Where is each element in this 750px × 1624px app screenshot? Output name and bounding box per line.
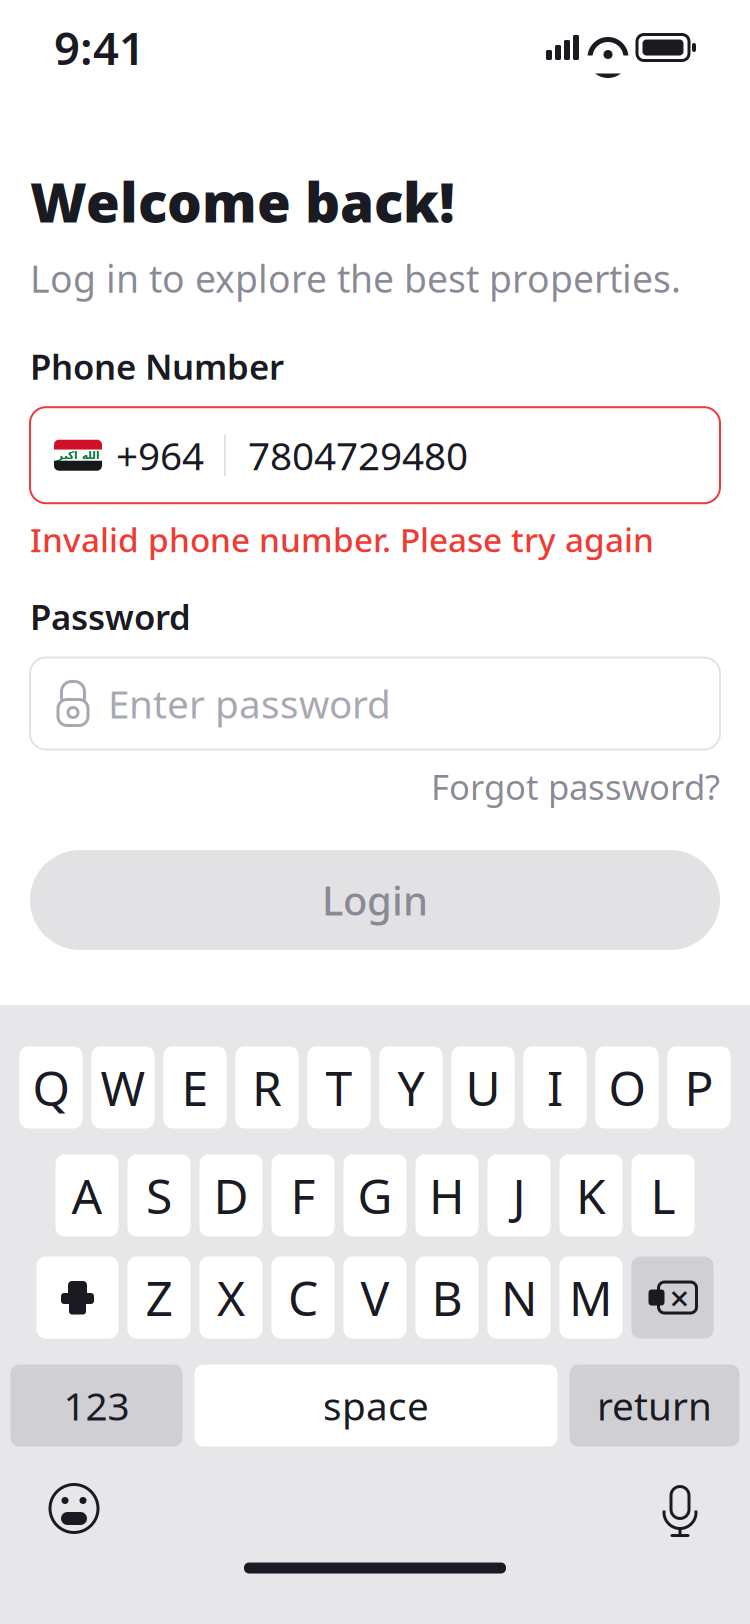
staticText: Invalid phone number. Please try again — [30, 517, 654, 561]
button[interactable]: T — [307, 1046, 370, 1128]
staticText: T — [325, 1056, 352, 1119]
button[interactable]: D — [199, 1154, 262, 1236]
staticText: +964 — [116, 429, 204, 481]
staticText: B — [431, 1266, 462, 1329]
staticText: U — [465, 1056, 500, 1119]
staticText: L — [650, 1164, 675, 1227]
button[interactable]: O — [595, 1046, 658, 1128]
button[interactable]: Emoji — [48, 1482, 100, 1534]
button[interactable]: N — [487, 1256, 550, 1338]
staticText: O — [608, 1056, 645, 1119]
button[interactable]: Shift — [36, 1256, 118, 1338]
staticText: F — [290, 1164, 315, 1227]
button[interactable]: Enter password — [30, 657, 720, 749]
button[interactable]: C — [271, 1256, 334, 1338]
staticText: Forgot password? — [431, 763, 720, 809]
button[interactable]: B — [415, 1256, 478, 1338]
staticText: A — [71, 1164, 102, 1227]
staticText: P — [684, 1056, 713, 1119]
button[interactable]: space — [194, 1364, 557, 1446]
staticText: E — [181, 1056, 208, 1119]
button[interactable]: F — [271, 1154, 334, 1236]
staticText: space — [323, 1380, 429, 1431]
button[interactable]: K — [559, 1154, 622, 1236]
staticText: Enter password — [108, 678, 391, 729]
button[interactable]: Z — [127, 1256, 190, 1338]
staticText: K — [576, 1164, 606, 1227]
staticText: S — [146, 1164, 172, 1227]
button[interactable]: 123 — [10, 1364, 182, 1446]
button[interactable]: Delete — [631, 1256, 713, 1338]
staticText: Log in to explore the best properties. — [30, 254, 681, 303]
staticText: return — [597, 1380, 712, 1431]
staticText: Y — [397, 1056, 424, 1119]
button[interactable]: الله اكبر — [30, 407, 720, 503]
staticText: الله اكبر — [56, 449, 99, 461]
button[interactable]: W — [91, 1046, 154, 1128]
staticText: W — [100, 1056, 145, 1119]
button[interactable]: R — [235, 1046, 298, 1128]
button[interactable]: X — [199, 1256, 262, 1338]
staticText: Login — [322, 873, 428, 926]
staticText: 7804729480 — [248, 429, 468, 481]
staticText: I — [547, 1056, 563, 1119]
staticText: H — [429, 1164, 465, 1227]
staticText: J — [512, 1164, 525, 1227]
staticText: Phone Number — [30, 343, 284, 389]
button[interactable]: I — [523, 1046, 586, 1128]
button[interactable]: U — [451, 1046, 514, 1128]
button[interactable]: Dictate — [658, 1480, 702, 1536]
staticText: 9:41 — [54, 17, 145, 78]
staticText: Z — [145, 1266, 172, 1329]
staticText: N — [501, 1266, 537, 1329]
staticText: Q — [32, 1056, 69, 1119]
button[interactable]: V — [343, 1256, 406, 1338]
button[interactable]: A — [55, 1154, 118, 1236]
button[interactable]: Q — [19, 1046, 82, 1128]
staticText: Welcome back! — [30, 165, 455, 238]
button[interactable]: G — [343, 1154, 406, 1236]
staticText: G — [357, 1164, 392, 1227]
staticText: X — [217, 1266, 245, 1329]
button[interactable]: Forgot password? — [431, 763, 720, 809]
button[interactable]: Y — [379, 1046, 442, 1128]
button[interactable]: Login — [30, 850, 720, 950]
staticText: R — [252, 1056, 282, 1119]
button[interactable]: P — [667, 1046, 730, 1128]
button[interactable]: return — [569, 1364, 739, 1446]
staticText: V — [360, 1266, 389, 1329]
button[interactable]: H — [415, 1154, 478, 1236]
button[interactable]: M — [559, 1256, 622, 1338]
staticText: × — [669, 1274, 689, 1320]
button[interactable]: J — [487, 1154, 550, 1236]
button[interactable]: S — [127, 1154, 190, 1236]
staticText: D — [213, 1164, 248, 1227]
staticText: 123 — [63, 1380, 129, 1431]
button[interactable]: L — [631, 1154, 694, 1236]
staticText: M — [569, 1266, 613, 1329]
staticText: C — [288, 1266, 318, 1329]
staticText: Password — [30, 593, 191, 639]
button[interactable]: E — [163, 1046, 226, 1128]
